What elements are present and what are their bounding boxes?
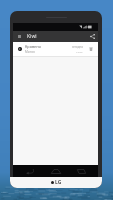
- button[interactable]: Delete: [87, 44, 95, 54]
- staticText: Kiwi: [27, 33, 37, 40]
- staticText: 13:42: [76, 50, 83, 53]
- button[interactable]: Menu: [15, 31, 24, 42]
- staticText: LG: [55, 179, 62, 186]
- button[interactable]: Back: [21, 165, 39, 177]
- button[interactable]: Recents: [72, 165, 90, 177]
- button[interactable]: Share: [87, 31, 97, 42]
- button[interactable]: Кровеня: [13, 42, 98, 56]
- button[interactable]: Home: [47, 165, 65, 177]
- staticText: Кровеня: [25, 44, 41, 49]
- staticText: сегодня: [72, 45, 83, 49]
- staticText: Минск: [25, 50, 35, 54]
